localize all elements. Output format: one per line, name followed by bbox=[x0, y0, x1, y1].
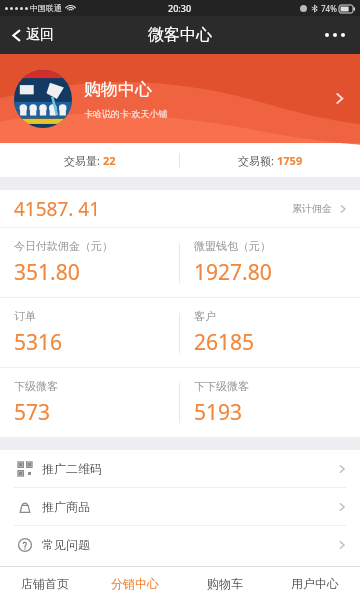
button[interactable]: 下下级微客 bbox=[180, 368, 360, 437]
staticText: 推广商品 bbox=[42, 499, 337, 514]
button[interactable]: 微盟钱包（元） bbox=[180, 228, 360, 297]
staticText: 微客中心 bbox=[148, 25, 212, 45]
button[interactable]: 推广商品 bbox=[0, 488, 360, 525]
staticText: 351.80 bbox=[14, 258, 80, 287]
staticText: 5316 bbox=[14, 328, 63, 357]
staticText: 1759 bbox=[277, 153, 303, 168]
button[interactable]: 下级微客 bbox=[0, 368, 179, 437]
staticText: 573 bbox=[14, 398, 51, 427]
staticText: 74% bbox=[321, 3, 337, 14]
staticText: 累计佣金 bbox=[292, 202, 332, 215]
button[interactable]: 分销中心 bbox=[90, 566, 180, 600]
button[interactable]: 常见问题 bbox=[0, 526, 360, 563]
button[interactable]: 返回 bbox=[0, 16, 64, 54]
staticText: 返回 bbox=[26, 26, 54, 44]
staticText: 微盟钱包（元） bbox=[194, 239, 271, 253]
button[interactable]: 订单 bbox=[0, 298, 179, 367]
button[interactable]: 购物车 bbox=[180, 566, 270, 600]
staticText: 卡哈说的卡·欢天小铺 bbox=[84, 107, 168, 119]
staticText: 常见问题 bbox=[42, 537, 337, 552]
button[interactable]: 店铺首页 bbox=[0, 566, 90, 600]
staticText: 店铺首页 bbox=[21, 576, 69, 591]
staticText: 分销中心 bbox=[111, 576, 159, 591]
staticText: 26185 bbox=[194, 328, 255, 357]
button[interactable]: 今日付款佣金（元） bbox=[0, 228, 179, 297]
button[interactable]: 41587. 41 bbox=[0, 190, 360, 227]
staticText: 购物车 bbox=[207, 576, 243, 591]
staticText: 下下级微客 bbox=[194, 379, 249, 393]
staticText: 今日付款佣金（元） bbox=[14, 239, 113, 253]
staticText: 订单 bbox=[14, 309, 36, 323]
staticText: 购物中心 bbox=[84, 79, 152, 100]
button[interactable]: 更多 bbox=[310, 16, 360, 54]
staticText: 推广二维码 bbox=[42, 461, 337, 476]
staticText: 中国联通 bbox=[30, 3, 62, 13]
staticText: 1927.80 bbox=[194, 258, 272, 287]
button[interactable]: 推广二维码 bbox=[0, 450, 360, 487]
staticText: 客户 bbox=[194, 309, 216, 323]
button[interactable]: 客户 bbox=[180, 298, 360, 367]
staticText: 交易额: bbox=[238, 153, 277, 168]
staticText: 下级微客 bbox=[14, 379, 58, 393]
staticText: 交易量: bbox=[64, 153, 103, 168]
staticText: 5193 bbox=[194, 398, 243, 427]
button[interactable]: 购物中心 bbox=[0, 54, 360, 143]
staticText: 41587. 41 bbox=[14, 196, 292, 222]
staticText: 用户中心 bbox=[291, 576, 339, 591]
staticText: 20:30 bbox=[168, 2, 192, 14]
button[interactable]: 用户中心 bbox=[270, 566, 360, 600]
staticText: 22 bbox=[103, 153, 116, 168]
